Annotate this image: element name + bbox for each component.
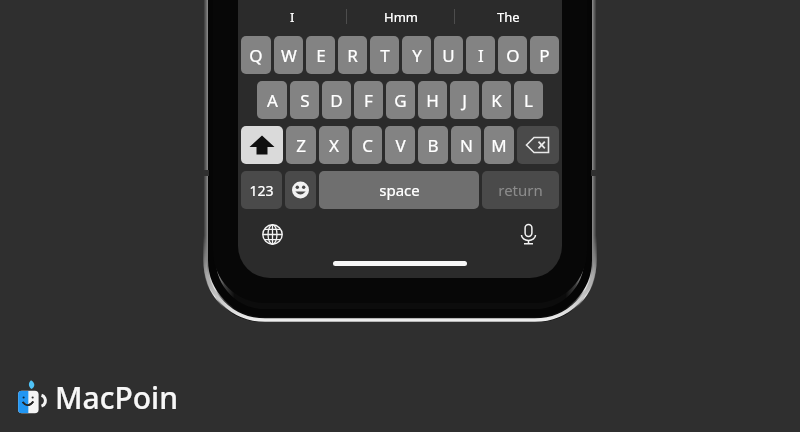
button[interactable]: P	[530, 36, 559, 74]
button[interactable]: The	[455, 0, 562, 33]
staticText: F	[364, 89, 373, 112]
button[interactable]: return	[482, 171, 559, 209]
button[interactable]: G	[386, 81, 415, 119]
staticText: B	[427, 134, 439, 157]
button[interactable]: Shift	[241, 126, 283, 164]
button[interactable]: O	[498, 36, 527, 74]
button[interactable]: space	[319, 171, 479, 209]
button[interactable]: U	[434, 36, 463, 74]
button[interactable]: D	[322, 81, 351, 119]
button[interactable]: A	[257, 81, 287, 119]
button[interactable]: B	[418, 126, 448, 164]
staticText: U	[442, 44, 455, 67]
button[interactable]: Q	[241, 36, 271, 74]
staticText: I	[478, 44, 484, 67]
button[interactable]: L	[514, 81, 543, 119]
button[interactable]: N	[451, 126, 481, 164]
staticText: V	[395, 134, 406, 157]
button[interactable]: R	[338, 36, 367, 74]
button[interactable]: V	[385, 126, 415, 164]
staticText: L	[524, 89, 533, 112]
staticText: R	[347, 44, 358, 67]
button[interactable]: X	[319, 126, 349, 164]
button[interactable]: Hmm	[347, 0, 454, 33]
button[interactable]: J	[450, 81, 479, 119]
staticText: H	[426, 89, 439, 112]
staticText: space	[379, 180, 420, 200]
staticText: Y	[412, 44, 422, 67]
staticText: X	[329, 134, 339, 157]
staticText: S	[300, 89, 310, 112]
staticText: The	[497, 8, 520, 26]
staticText: W	[281, 44, 297, 67]
button[interactable]: Change keyboard language	[256, 218, 288, 250]
button[interactable]: Dictate	[512, 218, 544, 250]
button[interactable]: Delete	[517, 126, 559, 164]
staticText: N	[460, 134, 473, 157]
staticText: D	[330, 89, 343, 112]
button[interactable]: C	[352, 126, 382, 164]
staticText: 123	[249, 181, 274, 200]
button[interactable]: F	[354, 81, 383, 119]
staticText: A	[267, 89, 278, 112]
button[interactable]: 123	[241, 171, 282, 209]
staticText: G	[394, 89, 407, 112]
staticText: MacPoin	[55, 377, 178, 418]
button[interactable]: T	[370, 36, 399, 74]
staticText: J	[462, 89, 467, 112]
staticText: C	[362, 134, 373, 157]
button[interactable]: S	[290, 81, 319, 119]
staticText: return	[498, 180, 543, 200]
button[interactable]: Y	[402, 36, 431, 74]
button[interactable]: I	[466, 36, 495, 74]
button[interactable]: E	[306, 36, 335, 74]
button[interactable]: K	[482, 81, 511, 119]
button[interactable]: Emoji	[285, 171, 316, 209]
staticText: K	[491, 89, 502, 112]
button[interactable]: Z	[286, 126, 316, 164]
staticText: E	[316, 44, 326, 67]
staticText: Hmm	[384, 8, 418, 26]
button[interactable]: I	[238, 0, 346, 33]
staticText: P	[539, 44, 550, 67]
button[interactable]: H	[418, 81, 447, 119]
staticText: M	[491, 134, 507, 157]
staticText: T	[380, 44, 390, 67]
staticText: Q	[249, 44, 263, 67]
button[interactable]: W	[274, 36, 303, 74]
button[interactable]: M	[484, 126, 514, 164]
staticText: Z	[296, 134, 306, 157]
staticText: O	[506, 44, 520, 67]
staticText: I	[290, 8, 295, 26]
